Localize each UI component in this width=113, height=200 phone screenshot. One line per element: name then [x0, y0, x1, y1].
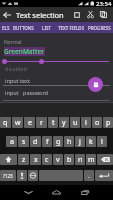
- staticText: d: [33, 137, 38, 147]
- staticText: z: [22, 155, 26, 165]
- button[interactable]: Enter: [95, 170, 113, 181]
- button[interactable]: Change keyboard: [28, 170, 38, 181]
- button[interactable]: Home: [47, 185, 65, 200]
- button[interactable]: BUTTONS: [11, 22, 36, 33]
- staticText: f: [46, 137, 49, 147]
- button[interactable]: f: [42, 136, 52, 147]
- staticText: 23:54: [96, 0, 112, 7]
- button[interactable]: i: [81, 117, 91, 128]
- staticText: password: [23, 89, 48, 96]
- staticText: h: [67, 137, 72, 147]
- staticText: y: [62, 118, 66, 128]
- staticText: input text: [5, 77, 30, 84]
- staticText: TEXT FIELDS: [58, 25, 85, 31]
- button[interactable]: LIST: [36, 22, 57, 33]
- button[interactable]: t: [48, 117, 58, 128]
- button[interactable]: q: [0, 117, 11, 128]
- button[interactable]: j: [75, 136, 85, 147]
- staticText: GreenMatter: [4, 47, 45, 56]
- button[interactable]: Copy: [97, 7, 109, 22]
- button[interactable]: PROGRESS: [85, 22, 113, 33]
- staticText: .: [88, 172, 90, 180]
- button[interactable]: Add: [88, 77, 103, 92]
- button[interactable]: .: [84, 170, 94, 181]
- staticText: m: [88, 155, 95, 165]
- staticText: p: [106, 118, 111, 128]
- button[interactable]: x: [30, 154, 41, 165]
- staticText: w: [15, 118, 21, 128]
- staticText: ELS: [2, 25, 10, 31]
- button[interactable]: ?123: [0, 170, 16, 181]
- button[interactable]: y: [59, 117, 69, 128]
- staticText: c: [45, 155, 49, 165]
- staticText: input: [5, 89, 19, 96]
- staticText: x: [34, 155, 38, 165]
- staticText: s: [22, 137, 26, 147]
- button[interactable]: w: [12, 117, 23, 128]
- staticText: Normal: [4, 39, 22, 46]
- button[interactable]: b: [64, 154, 74, 165]
- button[interactable]: m: [86, 154, 96, 165]
- staticText: LIST: [42, 25, 51, 31]
- staticText: u: [73, 118, 78, 128]
- staticText: Text selection: [16, 10, 64, 20]
- staticText: a: [10, 137, 14, 147]
- button[interactable]: d: [30, 136, 41, 147]
- button[interactable]: p: [103, 117, 113, 128]
- staticText: k: [89, 137, 93, 147]
- staticText: BUTTONS: [13, 25, 34, 31]
- button[interactable]: Recents: [76, 185, 94, 200]
- button[interactable]: Cut: [84, 7, 96, 22]
- button[interactable]: a: [6, 136, 17, 147]
- button[interactable]: h: [64, 136, 74, 147]
- staticText: g: [56, 137, 61, 147]
- button[interactable]: g: [53, 136, 63, 147]
- button[interactable]: Backspace: [97, 154, 113, 165]
- button[interactable]: r: [36, 117, 47, 128]
- staticText: t: [52, 118, 55, 128]
- button[interactable]: ELS: [0, 22, 11, 33]
- button[interactable]: n: [75, 154, 85, 165]
- staticText: q: [3, 118, 8, 128]
- staticText: v: [56, 155, 60, 165]
- staticText: ?123: [3, 173, 13, 179]
- staticText: n: [78, 155, 83, 165]
- staticText: o: [95, 118, 100, 128]
- staticText: e: [28, 118, 32, 128]
- button[interactable]: z: [18, 154, 29, 165]
- button[interactable]: k: [86, 136, 96, 147]
- button[interactable]: e: [24, 117, 35, 128]
- staticText: b: [67, 155, 72, 165]
- button[interactable]: c: [42, 154, 52, 165]
- button[interactable]: o: [92, 117, 102, 128]
- button[interactable]: Voice input: [17, 170, 27, 181]
- staticText: j: [79, 137, 81, 147]
- button[interactable]: Back: [19, 185, 37, 200]
- button[interactable]: Done: [0, 7, 14, 22]
- button[interactable]: Select all: [71, 7, 83, 22]
- button[interactable]: u: [70, 117, 80, 128]
- button[interactable]: l: [97, 136, 107, 147]
- button[interactable]: s: [18, 136, 29, 147]
- staticText: disabled: [5, 65, 27, 72]
- staticText: l: [101, 137, 103, 147]
- button[interactable]: Shift: [0, 154, 17, 165]
- staticText: PROGRESS: [88, 25, 111, 31]
- button[interactable]: TEXT FIELDS: [57, 22, 85, 33]
- staticText: r: [40, 118, 43, 128]
- staticText: i: [85, 118, 87, 128]
- button[interactable]: v: [53, 154, 63, 165]
